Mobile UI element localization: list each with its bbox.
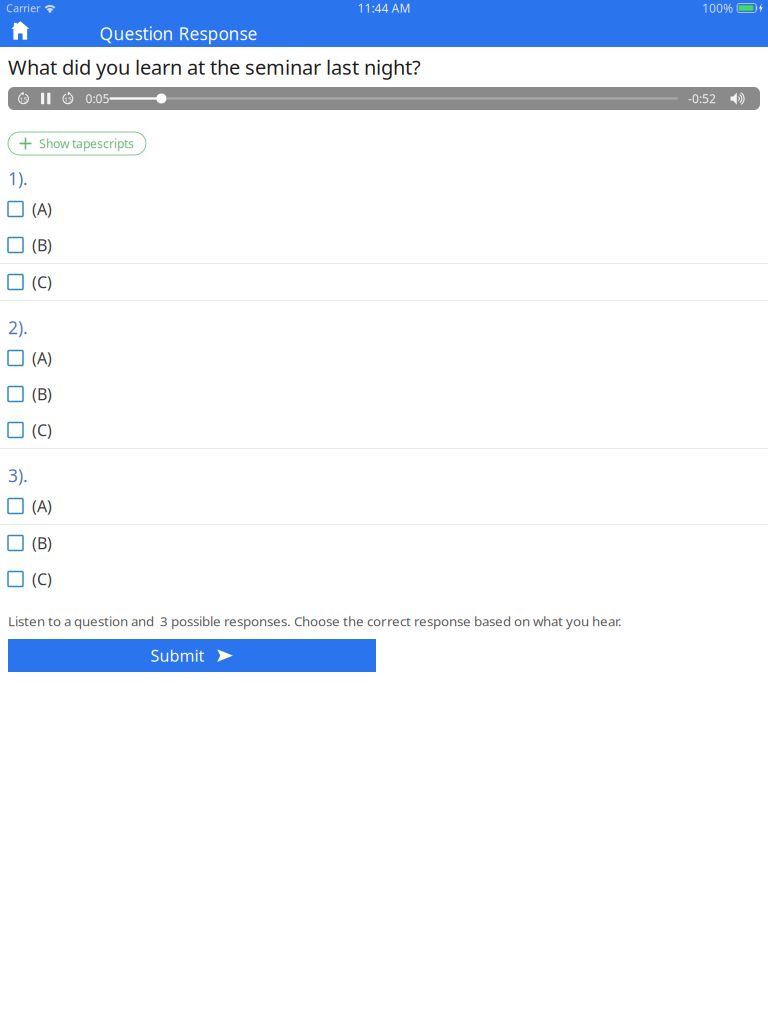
button[interactable]: Skip forward 15 seconds: [50, 91, 74, 105]
button[interactable]: (C): [0, 264, 768, 300]
staticText: (C): [32, 568, 52, 590]
staticText: 100%: [702, 0, 733, 16]
staticText: (B): [32, 383, 52, 405]
staticText: 0:05: [85, 90, 109, 106]
staticText: (A): [32, 347, 52, 369]
button[interactable]: Show tapescripts: [8, 132, 146, 155]
staticText: (B): [32, 234, 52, 256]
button[interactable]: (B): [0, 227, 768, 263]
button[interactable]: Volume: [716, 91, 760, 105]
staticText: (C): [32, 419, 52, 441]
button[interactable]: Pause: [30, 93, 50, 104]
staticText: (B): [32, 532, 52, 554]
staticText: Show tapescripts: [39, 135, 134, 151]
staticText: (A): [32, 198, 52, 220]
button[interactable]: (A): [0, 340, 768, 376]
staticText: Question Response: [99, 22, 257, 45]
button[interactable]: (A): [0, 488, 768, 524]
button[interactable]: (C): [0, 561, 768, 597]
staticText: -0:52: [688, 90, 716, 106]
staticText: Submit: [150, 645, 204, 666]
button[interactable]: Skip back 15 seconds: [8, 91, 30, 105]
staticText: (A): [32, 495, 52, 517]
staticText: 15: [64, 96, 72, 104]
staticText: 1).: [8, 167, 28, 190]
button[interactable]: (B): [0, 525, 768, 561]
button[interactable]: (B): [0, 376, 768, 412]
button[interactable]: (C): [0, 412, 768, 448]
staticText: 2).: [8, 316, 28, 339]
staticText: (C): [32, 271, 52, 293]
staticText: 3).: [8, 464, 28, 487]
button[interactable]: Submit: [8, 639, 376, 672]
button[interactable]: Home: [0, 20, 42, 47]
staticText: 15: [19, 96, 27, 104]
staticText: Carrier: [6, 1, 40, 15]
button[interactable]: (A): [0, 191, 768, 227]
staticText: What did you learn at the seminar last n…: [8, 54, 421, 80]
staticText: Listen to a question and 3 possible resp…: [8, 612, 622, 630]
staticText: 11:44 AM: [357, 0, 410, 16]
